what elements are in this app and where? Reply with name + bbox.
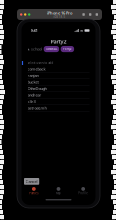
staticText: Party2 [63, 47, 72, 51]
staticText: Party2 [50, 38, 66, 45]
staticText: GENERAL [46, 47, 57, 51]
button[interactable]: Parties [21, 187, 46, 195]
staticText: ≈ [80, 28, 83, 33]
staticText: Map [56, 191, 61, 195]
staticText: bucket [27, 79, 38, 85]
staticText: OtheDough [27, 86, 46, 91]
button[interactable]: GENERAL [44, 46, 59, 52]
staticText: andrear [27, 92, 41, 98]
staticText: select users to add [27, 61, 53, 65]
button[interactable]: andrear [27, 92, 89, 98]
button[interactable]: comeback [27, 66, 89, 72]
button[interactable]: Map [46, 187, 71, 195]
button[interactable]: astroat.mh [27, 105, 89, 111]
staticText: Profile [78, 191, 88, 195]
staticText: Parties [29, 191, 38, 195]
staticText: ▲ [27, 48, 29, 51]
button[interactable]: c3r3 [27, 98, 89, 105]
button[interactable]: ranjan [27, 72, 89, 79]
button[interactable]: OtheDough [27, 85, 89, 92]
button[interactable]: Cancel [24, 178, 39, 185]
staticText: ranjan [27, 73, 38, 78]
staticText: Cancel [26, 179, 38, 184]
staticText: school [31, 46, 42, 52]
staticText: c3r3 [27, 99, 35, 104]
button[interactable]: Profile [71, 187, 95, 195]
button[interactable]: Party2 [61, 46, 74, 52]
staticText: astroat.mh [27, 105, 46, 111]
staticText: comeback [27, 66, 45, 72]
staticText: iOS 18.5 [53, 15, 65, 19]
staticText: iPhone 16 Pro [47, 10, 72, 16]
staticText: 9:41 [30, 28, 37, 33]
button[interactable]: bucket [27, 79, 89, 85]
